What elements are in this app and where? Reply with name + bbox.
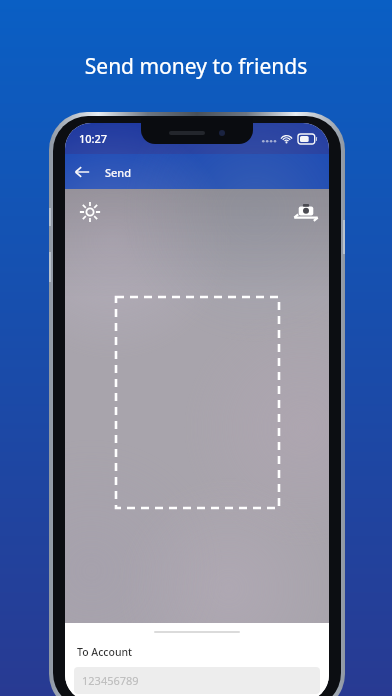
button[interactable]: Toggle flash bbox=[73, 195, 107, 229]
staticText: Send bbox=[105, 165, 132, 180]
button[interactable]: 123456789 bbox=[74, 667, 320, 694]
button[interactable]: Switch camera bbox=[289, 195, 323, 229]
staticText: To Account bbox=[77, 645, 133, 659]
button[interactable]: Back bbox=[65, 155, 99, 189]
staticText: Send money to friends bbox=[0, 52, 392, 81]
staticText: 123456789 bbox=[82, 673, 139, 688]
staticText: 10:27 bbox=[79, 131, 108, 146]
